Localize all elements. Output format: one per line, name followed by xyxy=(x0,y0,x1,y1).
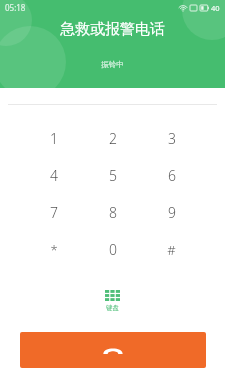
button[interactable]: Keypad xyxy=(97,288,128,314)
button[interactable]: 6 xyxy=(142,157,201,194)
button[interactable]: * xyxy=(24,231,83,268)
staticText: 40 xyxy=(211,3,220,13)
staticText: 6 xyxy=(168,166,176,185)
button[interactable]: 7 xyxy=(24,194,83,231)
staticText: 振铃中 xyxy=(101,60,124,69)
staticText: 5 xyxy=(109,166,117,185)
staticText: 4 xyxy=(50,166,58,185)
staticText: 05:18 xyxy=(5,2,26,13)
staticText: * xyxy=(50,241,58,259)
button[interactable]: 4 xyxy=(24,157,83,194)
button[interactable]: # xyxy=(142,231,201,268)
staticText: 急救或报警电话 xyxy=(60,20,165,39)
staticText: 0 xyxy=(109,240,117,259)
button[interactable]: 9 xyxy=(142,194,201,231)
staticText: 3 xyxy=(168,129,176,148)
staticText: 8 xyxy=(109,203,117,222)
button[interactable]: 8 xyxy=(83,194,142,231)
button[interactable]: 2 xyxy=(83,120,142,157)
button[interactable]: 0 xyxy=(83,231,142,268)
staticText: 键盘 xyxy=(106,304,119,312)
staticText: 9 xyxy=(168,203,176,222)
staticText: 1 xyxy=(50,129,58,148)
staticText: 7 xyxy=(50,203,58,222)
staticText: 2 xyxy=(109,129,117,148)
button[interactable]: 5 xyxy=(83,157,142,194)
button[interactable]: 1 xyxy=(24,120,83,157)
staticText: # xyxy=(167,241,176,259)
button[interactable]: End call xyxy=(20,332,206,368)
button[interactable]: 3 xyxy=(142,120,201,157)
